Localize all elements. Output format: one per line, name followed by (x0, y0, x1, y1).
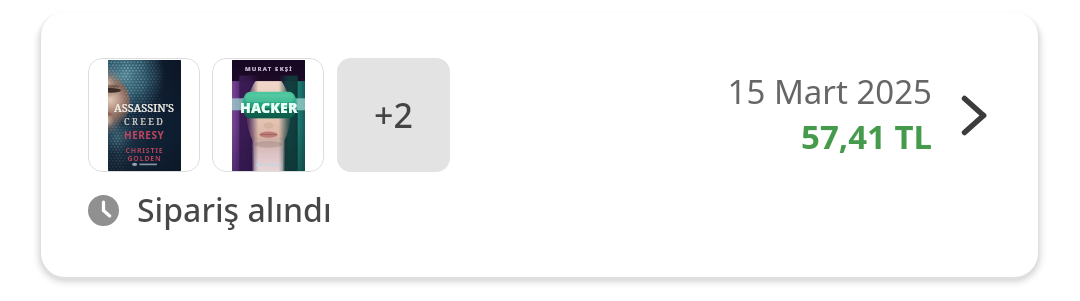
staticText: CREED (124, 115, 166, 127)
staticText: ASSASSIN'S (114, 100, 175, 115)
staticText: CHRISTIE GOLDEN (125, 146, 164, 163)
button[interactable]: +2 (337, 58, 450, 172)
staticText: +2 (374, 92, 413, 138)
button[interactable]: ASSASSIN'S (41, 12, 1038, 277)
staticText: MURAT EKŞİ (245, 65, 293, 73)
staticText: 15 Mart 2025 (727, 69, 932, 114)
staticText: HACKER (240, 98, 298, 117)
staticText: HERESY (124, 128, 165, 142)
button[interactable]: MURAT EKŞİ (212, 58, 324, 172)
button[interactable]: Sipariş detayları (944, 90, 1004, 140)
staticText: Sipariş alındı (137, 188, 332, 232)
button[interactable]: ASSASSIN'S (88, 58, 200, 172)
staticText: 57,41 TL (801, 114, 932, 159)
